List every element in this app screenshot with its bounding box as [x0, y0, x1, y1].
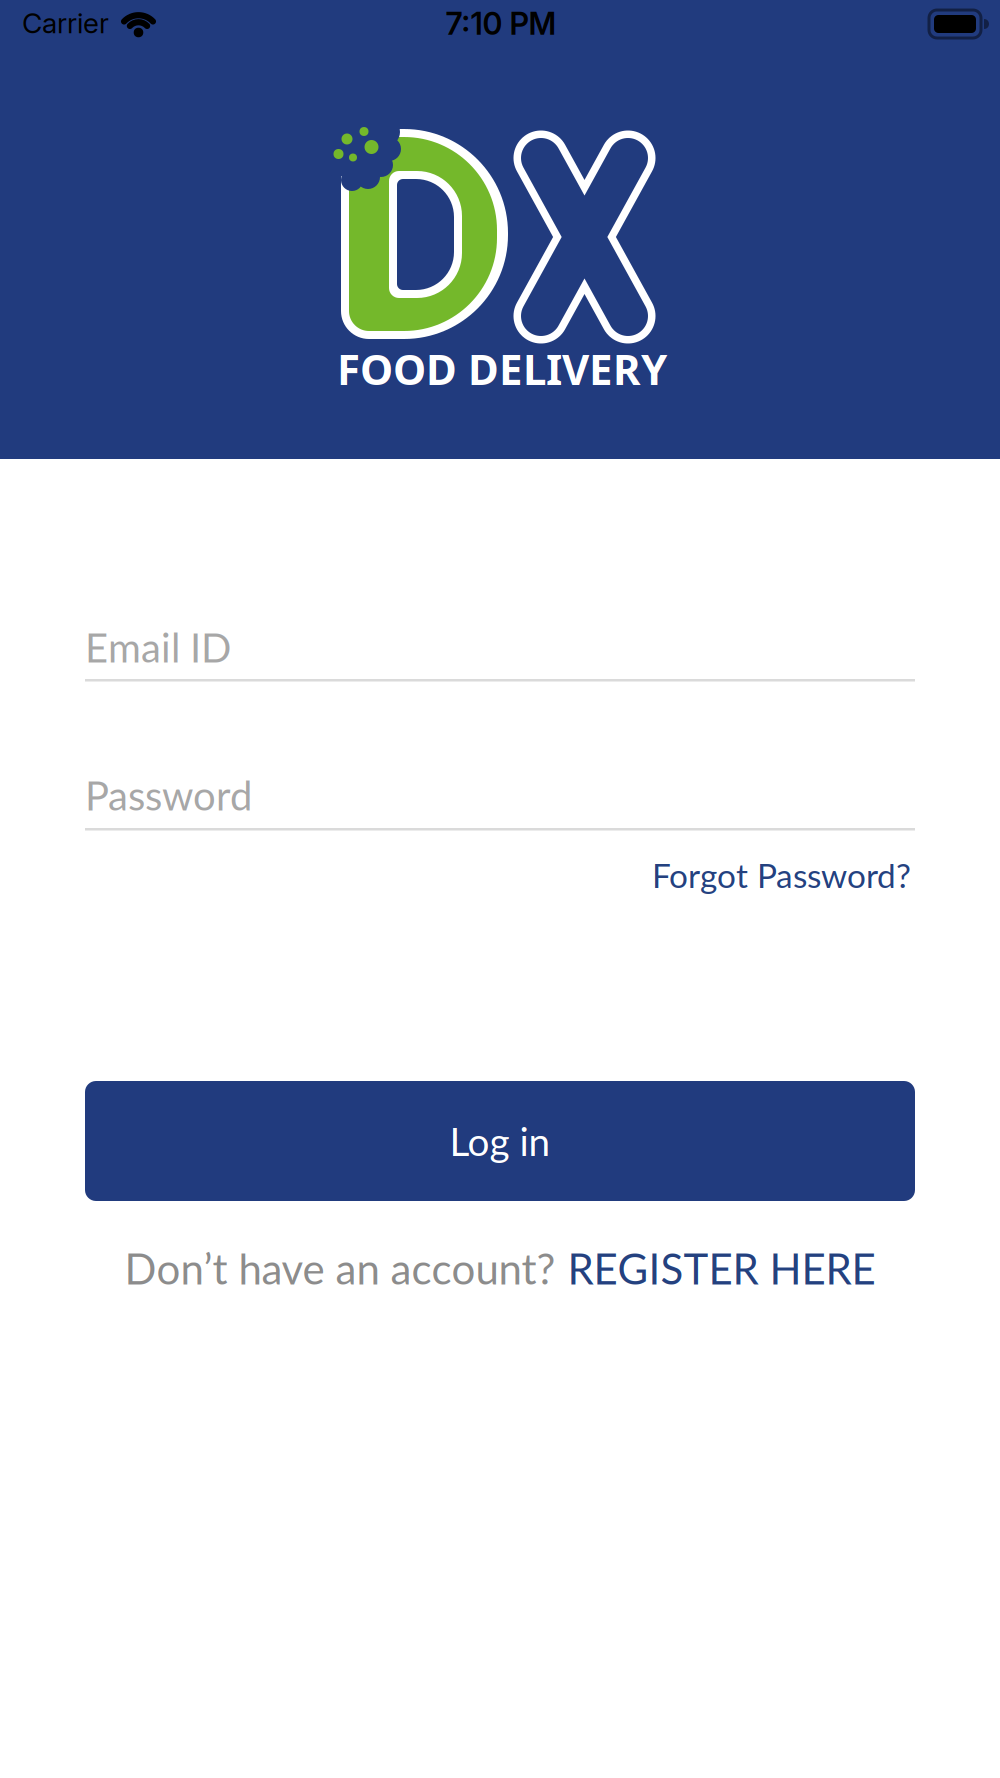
staticText: Forgot Password?: [652, 855, 911, 895]
staticText: Log in: [449, 1118, 550, 1164]
button[interactable]: Password: [85, 771, 915, 833]
staticText: Don’t have an account?: [124, 1243, 555, 1293]
staticText: Password: [85, 771, 252, 819]
button[interactable]: REGISTER HERE: [567, 1243, 875, 1293]
button[interactable]: Forgot Password?: [652, 855, 911, 895]
button[interactable]: Email ID: [85, 623, 915, 685]
staticText: REGISTER HERE: [567, 1243, 875, 1293]
staticText: 7:10 PM: [445, 5, 556, 42]
staticText: Carrier: [22, 6, 109, 40]
staticText: FOOD DELIVERY: [337, 340, 667, 397]
staticText: Email ID: [85, 623, 231, 671]
button[interactable]: Log in: [85, 1081, 915, 1201]
